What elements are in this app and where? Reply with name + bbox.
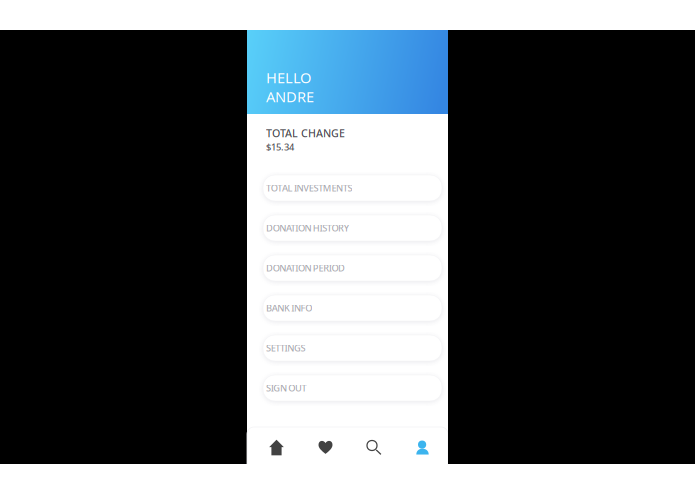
button[interactable]: Profile (398, 429, 447, 466)
staticText: SIGN OUT (266, 382, 307, 394)
staticText: ANDRE (266, 87, 314, 106)
button[interactable]: Favorites (301, 429, 350, 466)
staticText: $15.34 (266, 141, 294, 153)
staticText: DONATION HISTORY (266, 222, 349, 234)
staticText: SETTINGS (266, 342, 306, 354)
staticText: HELLO (266, 68, 311, 87)
staticText: BANK INFO (266, 302, 312, 314)
button[interactable]: Home (252, 429, 301, 466)
button[interactable]: TOTAL INVESTMENTS (263, 175, 442, 201)
staticText: TOTAL CHANGE (266, 126, 345, 140)
staticText: DONATION PERIOD (266, 262, 345, 274)
button[interactable]: SIGN OUT (263, 375, 442, 401)
staticText: TOTAL INVESTMENTS (266, 182, 352, 194)
button[interactable]: SETTINGS (263, 335, 442, 361)
button[interactable]: DONATION PERIOD (263, 255, 442, 281)
button[interactable]: BANK INFO (263, 295, 442, 321)
button[interactable]: Search (350, 429, 398, 466)
button[interactable]: DONATION HISTORY (263, 215, 442, 241)
